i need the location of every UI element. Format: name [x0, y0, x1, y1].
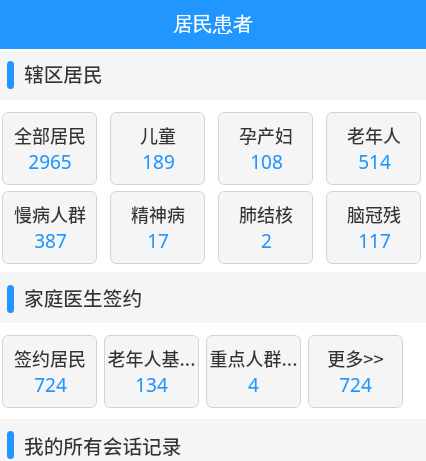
staticText: 居民患者 [173, 12, 253, 37]
staticText: 2965 [28, 149, 72, 175]
button[interactable]: 肺结核 [218, 191, 313, 264]
staticText: 117 [358, 228, 391, 254]
button[interactable]: 重点人群... [206, 335, 301, 408]
staticText: 514 [358, 149, 391, 175]
button[interactable]: 慢病人群 [2, 191, 97, 264]
staticText: 精神病 [131, 201, 185, 227]
button[interactable]: 老年人 [326, 112, 421, 185]
staticText: 肺结核 [239, 201, 293, 227]
staticText: 更多>> [327, 345, 384, 371]
button[interactable]: 精神病 [110, 191, 205, 264]
staticText: 108 [250, 149, 283, 175]
staticText: 慢病人群 [14, 201, 86, 227]
staticText: 724 [34, 372, 67, 398]
staticText: 2 [261, 228, 272, 254]
staticText: 辖区居民 [24, 59, 103, 88]
staticText: 全部居民 [14, 122, 86, 148]
staticText: 孕产妇 [239, 122, 293, 148]
staticText: 儿童 [140, 122, 176, 148]
staticText: 脑冠残 [347, 201, 401, 227]
button[interactable]: 孕产妇 [218, 112, 313, 185]
staticText: 724 [339, 372, 372, 398]
button[interactable]: 更多>> [308, 335, 403, 408]
staticText: 387 [34, 228, 67, 254]
button[interactable]: 儿童 [110, 112, 205, 185]
staticText: 17 [147, 228, 169, 254]
button[interactable]: 全部居民 [2, 112, 97, 185]
staticText: 我的所有会话记录 [24, 431, 182, 460]
button[interactable]: 脑冠残 [326, 191, 421, 264]
staticText: 134 [135, 372, 168, 398]
staticText: 家庭医生签约 [24, 283, 143, 312]
staticText: 签约居民 [14, 345, 86, 371]
staticText: 老年人 [347, 122, 401, 148]
staticText: 189 [142, 149, 175, 175]
staticText: 老年人基... [107, 345, 196, 371]
staticText: 重点人群... [209, 345, 298, 371]
button[interactable]: 老年人基... [104, 335, 199, 408]
staticText: 4 [248, 372, 259, 398]
button[interactable]: 签约居民 [2, 335, 97, 408]
